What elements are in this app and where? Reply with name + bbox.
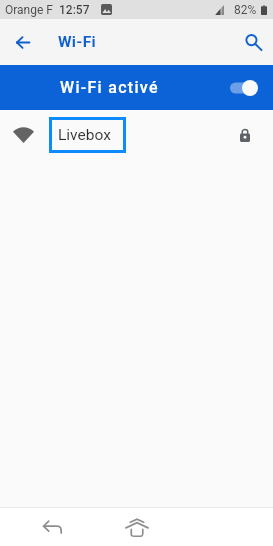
staticText: Orange F [5, 3, 53, 17]
button[interactable]: Back [0, 508, 105, 546]
staticText: Livebox [58, 126, 111, 144]
button[interactable]: Back [0, 19, 46, 65]
staticText: Wi-Fi activé [60, 78, 159, 97]
button[interactable]: Search [233, 19, 273, 65]
staticText: 12:57 [59, 3, 90, 17]
button[interactable]: Secured network [230, 120, 260, 150]
staticText: 82% [234, 3, 257, 17]
button[interactable]: Home [105, 508, 169, 546]
button[interactable]: Livebox [0, 110, 273, 155]
staticText: Wi-Fi [58, 33, 96, 51]
button[interactable]: Wi-Fi activé [0, 65, 273, 110]
